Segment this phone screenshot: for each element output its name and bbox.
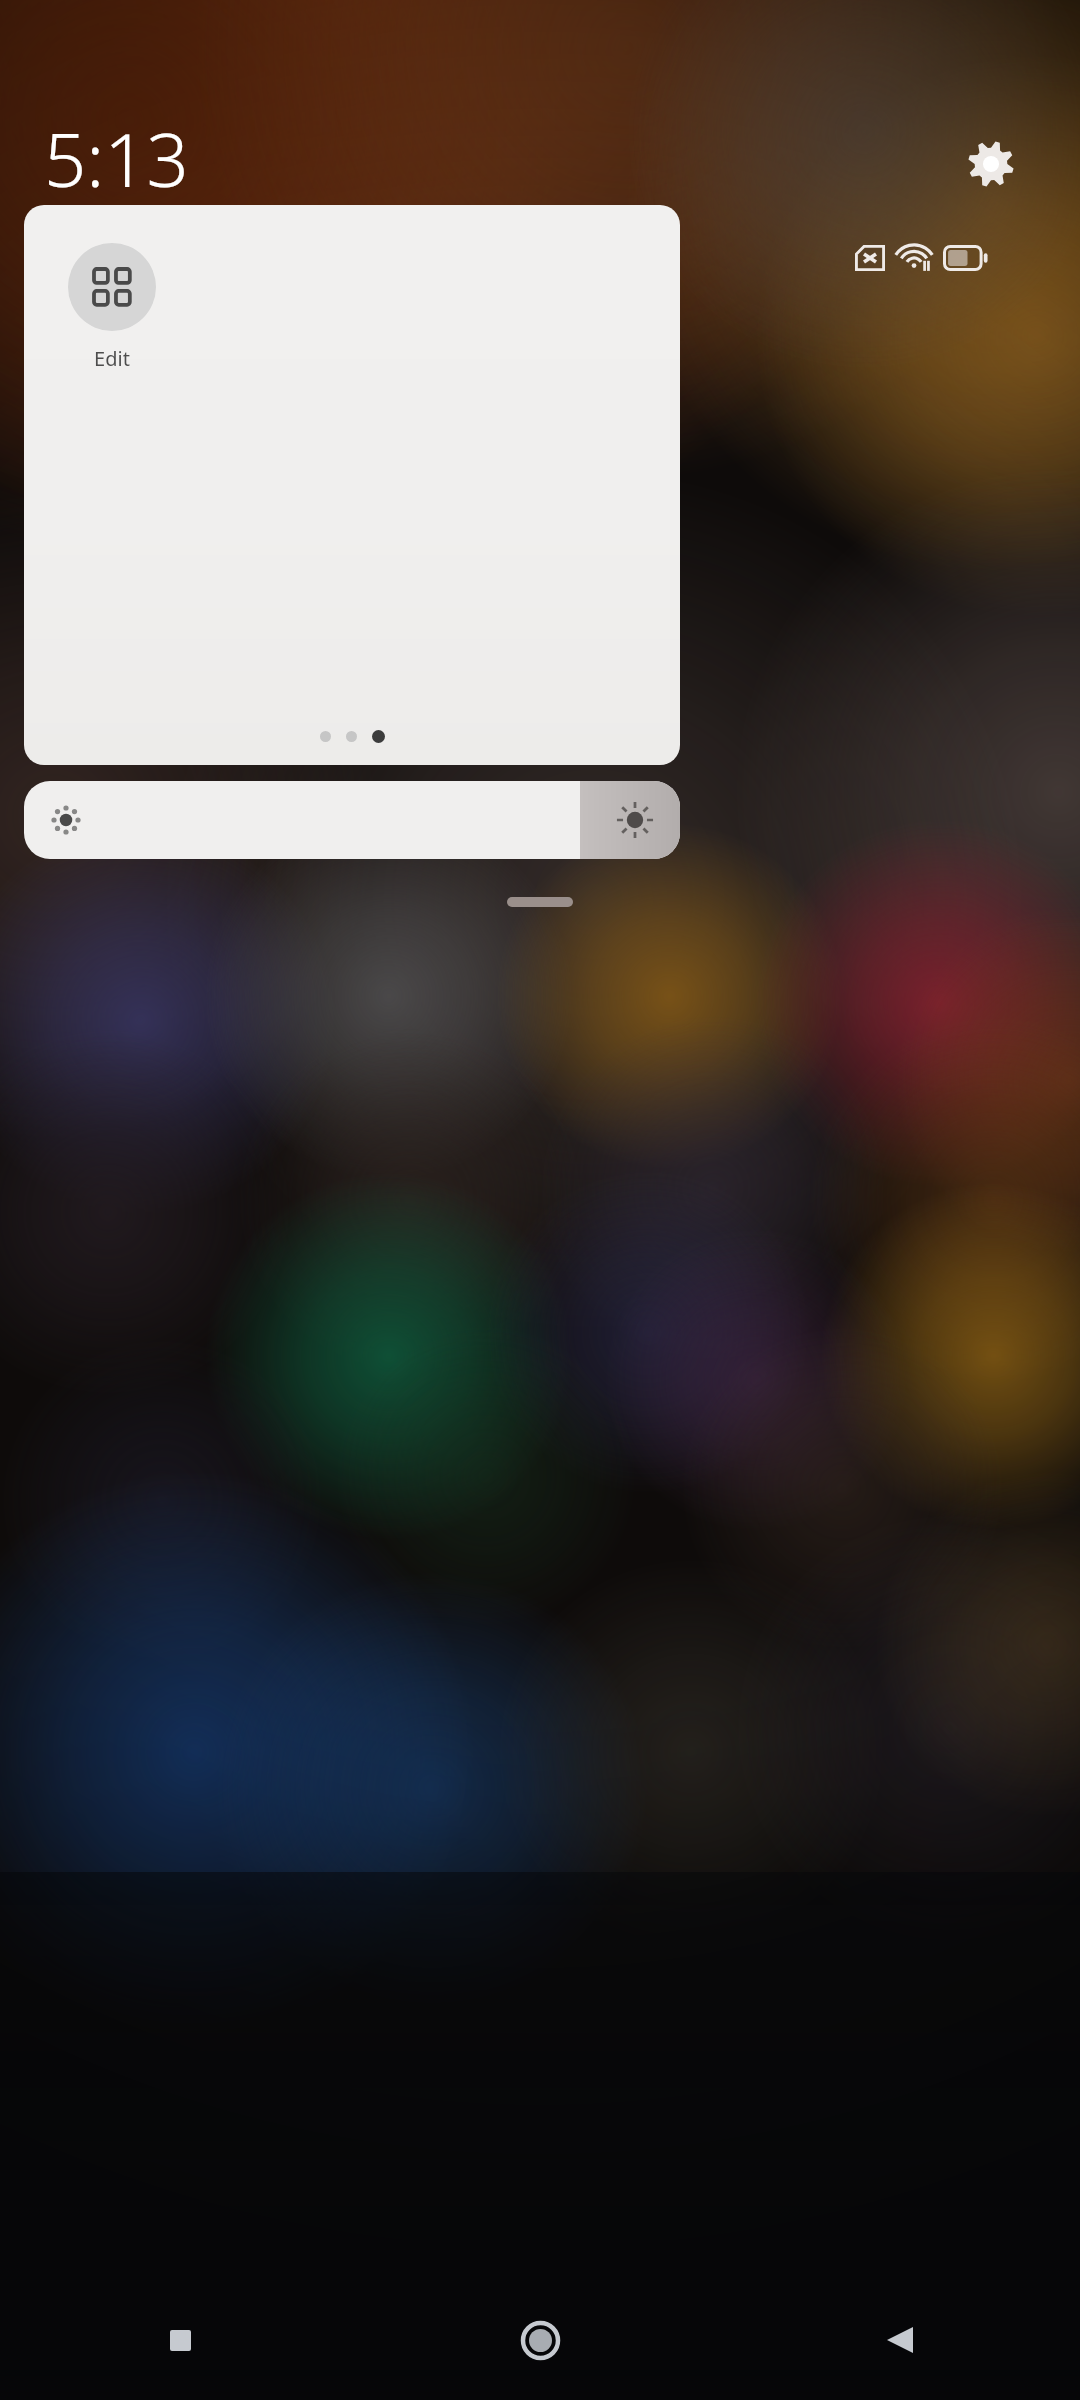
button[interactable]: Recents (0, 2280, 360, 2400)
button[interactable]: Brightness (24, 781, 680, 859)
staticText: Fri, Sep 11 (44, 217, 166, 251)
staticText: 5:13 (44, 108, 189, 209)
button[interactable]: Settings (960, 133, 1022, 195)
staticText: Edit (94, 345, 130, 372)
button[interactable]: Home (360, 2280, 720, 2400)
button[interactable]: Back (720, 2280, 1080, 2400)
button[interactable]: Edit (68, 243, 156, 372)
